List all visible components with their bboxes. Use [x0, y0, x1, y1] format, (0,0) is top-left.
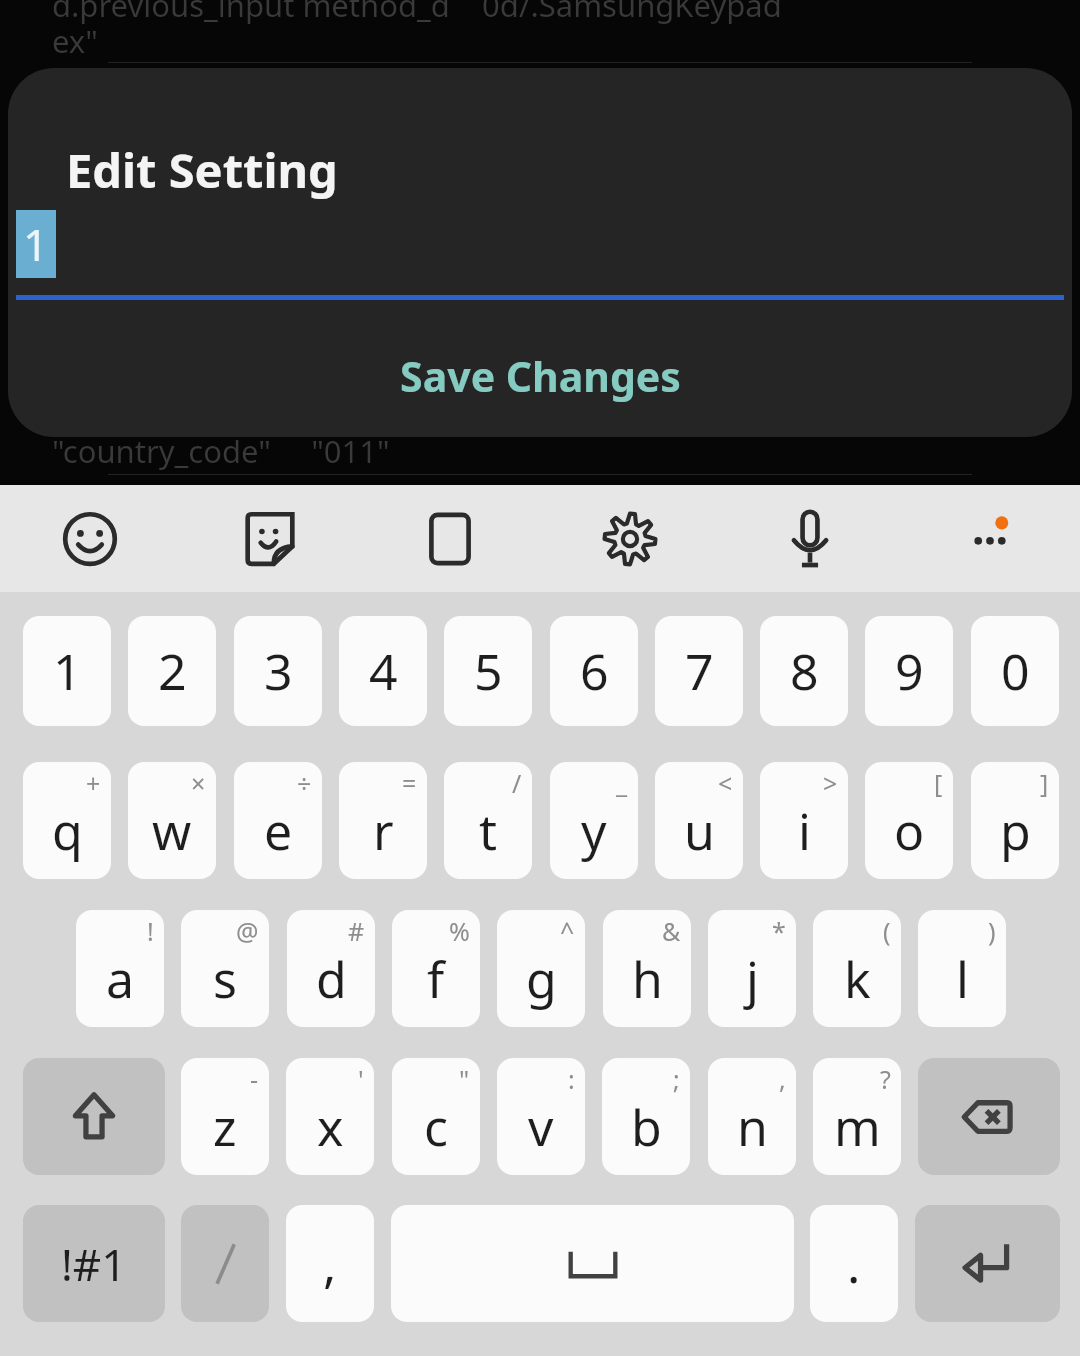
staticText: 0: [1001, 637, 1030, 705]
button[interactable]: Change language: [181, 1205, 269, 1322]
button[interactable]: Enter: [915, 1205, 1060, 1322]
button[interactable]: <: [655, 762, 743, 879]
staticText: Save Changes: [400, 348, 681, 404]
button[interactable]: Emoji: [0, 485, 180, 592]
button[interactable]: Voice input: [720, 485, 900, 592]
button[interactable]: ×: [128, 762, 216, 879]
button[interactable]: (: [813, 910, 901, 1027]
button[interactable]: GIF: [360, 485, 540, 592]
button[interactable]: /: [444, 762, 532, 879]
staticText: [: [934, 766, 943, 800]
button[interactable]: [: [865, 762, 953, 879]
button[interactable]: !: [76, 910, 164, 1027]
button[interactable]: ": [392, 1058, 480, 1175]
staticText: ,: [323, 1230, 337, 1298]
button[interactable]: ;: [602, 1058, 690, 1175]
button[interactable]: ): [918, 910, 1006, 1027]
staticText: 2: [158, 637, 187, 705]
staticText: ex": [52, 20, 98, 62]
staticText: p: [1000, 797, 1031, 865]
button[interactable]: ?: [813, 1058, 901, 1175]
staticText: ": [459, 1062, 470, 1096]
staticText: 3: [264, 637, 293, 705]
staticText: *: [772, 914, 786, 948]
button[interactable]: 1: [23, 616, 111, 726]
staticText: !#1: [61, 1234, 127, 1294]
button[interactable]: %: [392, 910, 480, 1027]
staticText: ;: [673, 1062, 680, 1096]
button[interactable]: #: [287, 910, 375, 1027]
staticText: _: [616, 766, 628, 800]
staticText: 6: [580, 637, 609, 705]
button[interactable]: 2: [128, 616, 216, 726]
staticText: %: [449, 914, 470, 948]
button[interactable]: ÷: [234, 762, 322, 879]
button[interactable]: @: [181, 910, 269, 1027]
staticText: d.previous_input method_d 0d/.SamsungKey…: [52, 0, 782, 26]
staticText: d: [316, 945, 347, 1013]
staticText: -: [250, 1062, 259, 1096]
staticText: Edit Setting: [66, 138, 338, 202]
button[interactable]: 4: [339, 616, 427, 726]
button[interactable]: ': [286, 1058, 374, 1175]
staticText: ^: [560, 914, 575, 948]
staticText: ×: [191, 766, 206, 800]
staticText: ÷: [297, 766, 312, 800]
staticText: j: [746, 945, 759, 1013]
button[interactable]: ,: [286, 1205, 374, 1322]
button[interactable]: .: [810, 1205, 898, 1322]
staticText: &: [662, 914, 681, 948]
button[interactable]: +: [23, 762, 111, 879]
button[interactable]: -: [181, 1058, 269, 1175]
staticText: h: [632, 945, 663, 1013]
staticText: !: [147, 914, 154, 948]
button[interactable]: >: [760, 762, 848, 879]
button[interactable]: *: [708, 910, 796, 1027]
staticText: .: [847, 1230, 861, 1298]
staticText: s: [213, 945, 237, 1013]
staticText: 1: [53, 637, 82, 705]
button[interactable]: !#1: [23, 1205, 165, 1322]
button[interactable]: More options: [900, 485, 1080, 592]
staticText: 7: [685, 637, 714, 705]
staticText: o: [894, 797, 925, 865]
button[interactable]: 6: [550, 616, 638, 726]
staticText: e: [264, 797, 293, 865]
staticText: m: [834, 1093, 881, 1161]
staticText: i: [798, 797, 811, 865]
button[interactable]: 0: [971, 616, 1059, 726]
staticText: :: [568, 1062, 575, 1096]
button[interactable]: Shift: [23, 1058, 165, 1175]
staticText: g: [526, 945, 557, 1013]
button[interactable]: ]: [971, 762, 1059, 879]
button[interactable]: 5: [444, 616, 532, 726]
button[interactable]: _: [550, 762, 638, 879]
button[interactable]: 7: [655, 616, 743, 726]
staticText: r: [373, 797, 394, 865]
button[interactable]: Space: [391, 1205, 794, 1322]
button[interactable]: 3: [234, 616, 322, 726]
staticText: "country_code" "011": [52, 430, 390, 472]
staticText: /: [512, 766, 522, 800]
button[interactable]: 8: [760, 616, 848, 726]
staticText: (: [883, 914, 891, 948]
button[interactable]: 9: [865, 616, 953, 726]
button[interactable]: Stickers: [180, 485, 360, 592]
staticText: 1: [23, 214, 49, 274]
button[interactable]: Delete: [918, 1058, 1060, 1175]
staticText: 4: [369, 637, 398, 705]
button[interactable]: Keyboard settings: [540, 485, 720, 592]
staticText: w: [152, 797, 192, 865]
button[interactable]: :: [497, 1058, 585, 1175]
staticText: z: [213, 1093, 237, 1161]
button[interactable]: ,: [708, 1058, 796, 1175]
staticText: u: [684, 797, 715, 865]
button[interactable]: Save Changes: [8, 326, 1072, 426]
button[interactable]: =: [339, 762, 427, 879]
button[interactable]: &: [603, 910, 691, 1027]
button[interactable]: ^: [497, 910, 585, 1027]
staticText: f: [427, 945, 445, 1013]
staticText: ': [358, 1062, 364, 1096]
staticText: t: [479, 797, 498, 865]
staticText: c: [424, 1093, 448, 1161]
